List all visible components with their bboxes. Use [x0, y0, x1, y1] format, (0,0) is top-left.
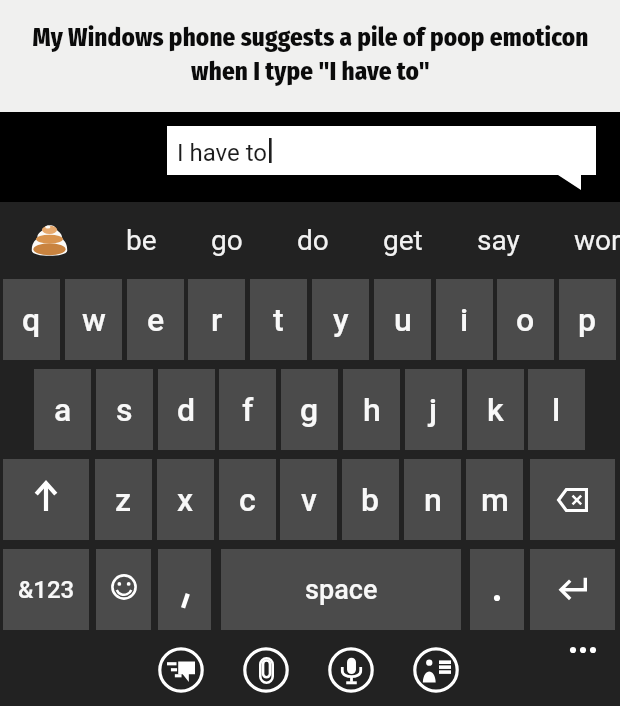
button[interactable]: get: [356, 202, 450, 279]
staticText: t: [273, 301, 284, 339]
staticText: k: [487, 391, 504, 429]
staticText: a: [54, 391, 72, 429]
button[interactable]: u: [374, 279, 431, 360]
button[interactable]: do: [270, 202, 356, 279]
button[interactable]: m: [466, 459, 523, 540]
button[interactable]: y: [312, 279, 369, 360]
button[interactable]: &123: [3, 549, 89, 630]
button[interactable]: Backspace: [530, 459, 615, 540]
button[interactable]: o: [497, 279, 554, 360]
staticText: h: [363, 391, 381, 429]
staticText: z: [115, 481, 132, 519]
staticText: go: [211, 224, 243, 257]
staticText: x: [177, 481, 194, 519]
staticText: d: [177, 391, 196, 429]
button[interactable]: More options: [563, 634, 603, 666]
button[interactable]: d: [158, 369, 215, 450]
button[interactable]: n: [404, 459, 461, 540]
button[interactable]: v: [280, 459, 337, 540]
button[interactable]: x: [157, 459, 214, 540]
button[interactable]: i: [436, 279, 493, 360]
button[interactable]: Pile of poop emoji suggestion: [0, 202, 99, 279]
staticText: s: [116, 391, 133, 429]
button[interactable]: g: [281, 369, 338, 450]
staticText: v: [301, 481, 317, 519]
button[interactable]: r: [188, 279, 245, 360]
staticText: m: [481, 481, 509, 519]
staticText: n: [424, 481, 442, 519]
staticText: w: [82, 301, 106, 339]
button[interactable]: j: [405, 369, 462, 450]
button[interactable]: be: [99, 202, 184, 279]
button[interactable]: Enter: [530, 549, 615, 630]
button[interactable]: l: [528, 369, 585, 450]
staticText: c: [239, 481, 256, 519]
staticText: u: [394, 301, 412, 339]
staticText: r: [211, 301, 223, 339]
staticText: y: [333, 301, 349, 339]
button[interactable]: q: [3, 279, 60, 360]
button[interactable]: Period: [470, 549, 524, 630]
staticText: b: [361, 481, 380, 519]
button[interactable]: Emoji: [96, 549, 151, 630]
button[interactable]: k: [467, 369, 524, 450]
button[interactable]: b: [342, 459, 399, 540]
staticText: space: [305, 574, 378, 606]
staticText: My Windows phone suggests a pile of poop…: [32, 23, 589, 86]
button[interactable]: Suggestions: [158, 647, 204, 693]
staticText: o: [516, 301, 535, 339]
button[interactable]: Attach file: [243, 647, 289, 693]
button[interactable]: e: [127, 279, 184, 360]
staticText: f: [242, 391, 254, 429]
staticText: get: [383, 224, 423, 257]
button[interactable]: p: [559, 279, 616, 360]
button[interactable]: t: [250, 279, 307, 360]
button[interactable]: w: [65, 279, 122, 360]
staticText: do: [297, 224, 329, 257]
button[interactable]: s: [96, 369, 153, 450]
staticText: I have to: [177, 139, 268, 167]
button[interactable]: c: [219, 459, 276, 540]
button[interactable]: go: [184, 202, 270, 279]
button[interactable]: Shift: [3, 459, 89, 540]
staticText: p: [578, 301, 597, 339]
button[interactable]: a: [34, 369, 91, 450]
button[interactable]: Voice input: [328, 647, 374, 693]
button[interactable]: f: [219, 369, 276, 450]
button[interactable]: h: [343, 369, 400, 450]
staticText: &123: [18, 576, 75, 604]
button[interactable]: Comma: [158, 549, 211, 630]
button[interactable]: z: [95, 459, 152, 540]
staticText: q: [22, 301, 41, 339]
button[interactable]: space: [221, 549, 461, 630]
button[interactable]: world: [547, 202, 620, 279]
button[interactable]: say: [450, 202, 547, 279]
staticText: l: [552, 391, 561, 429]
staticText: say: [477, 224, 520, 257]
staticText: g: [300, 391, 319, 429]
staticText: e: [147, 301, 165, 339]
staticText: i: [460, 301, 469, 339]
staticText: world: [574, 224, 620, 257]
staticText: j: [429, 391, 438, 429]
staticText: be: [126, 224, 157, 257]
button[interactable]: Contacts: [413, 647, 459, 693]
